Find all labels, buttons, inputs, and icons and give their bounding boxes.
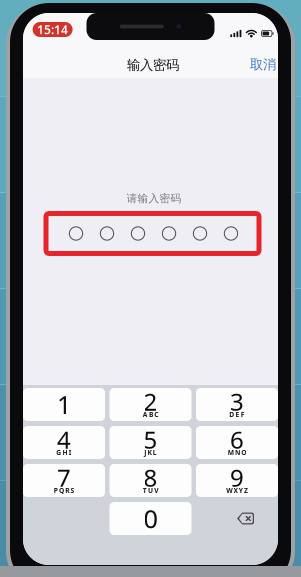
staticText: 5 bbox=[143, 424, 157, 455]
staticText: WXYZ bbox=[226, 486, 248, 495]
button[interactable]: Delete bbox=[196, 502, 278, 535]
button[interactable]: 6 bbox=[196, 426, 278, 459]
staticText: ABC bbox=[143, 410, 158, 419]
staticText: DEF bbox=[229, 410, 245, 419]
button[interactable]: 3 bbox=[196, 388, 278, 421]
button[interactable]: 8 bbox=[109, 464, 191, 497]
staticText: 2 bbox=[143, 386, 157, 417]
staticText: 8 bbox=[143, 462, 157, 493]
staticText: 9 bbox=[230, 462, 244, 493]
staticText: GHI bbox=[56, 448, 72, 457]
button[interactable]: 0 bbox=[109, 502, 191, 535]
staticText: TUV bbox=[143, 486, 158, 495]
staticText: 4 bbox=[57, 424, 71, 455]
staticText: 0 bbox=[143, 502, 157, 535]
button[interactable]: 取消 bbox=[248, 54, 278, 77]
staticText: 15:14 bbox=[37, 21, 68, 37]
staticText: 7 bbox=[57, 462, 71, 493]
staticText: PQRS bbox=[54, 486, 74, 495]
button[interactable]: 4 bbox=[23, 426, 105, 459]
button[interactable]: 1 bbox=[23, 388, 105, 421]
staticText: 请输入密码 bbox=[126, 192, 181, 205]
staticText: 3 bbox=[230, 386, 244, 417]
staticText: JKL bbox=[144, 448, 157, 457]
staticText: 6 bbox=[230, 424, 244, 455]
button[interactable]: 2 bbox=[109, 388, 191, 421]
staticText: 输入密码 bbox=[127, 57, 179, 73]
staticText: 1 bbox=[57, 388, 71, 421]
staticText: 取消 bbox=[250, 56, 276, 73]
button[interactable]: 5 bbox=[109, 426, 191, 459]
staticText: MNO bbox=[228, 448, 246, 457]
button[interactable]: 9 bbox=[196, 464, 278, 497]
button[interactable]: 7 bbox=[23, 464, 105, 497]
